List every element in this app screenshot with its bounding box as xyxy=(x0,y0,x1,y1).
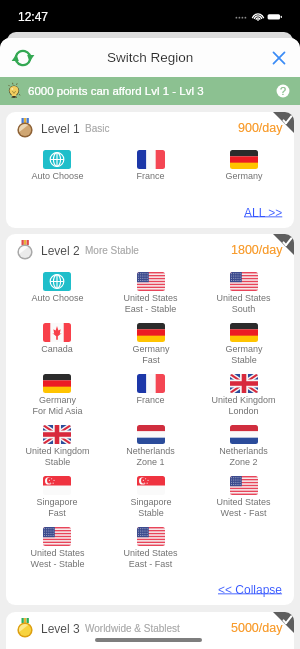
staticText: Auto Choose xyxy=(31,293,84,303)
button[interactable]: ALL >> xyxy=(244,206,283,219)
button[interactable]: << Collapse xyxy=(218,583,283,596)
staticText: Germany Fast xyxy=(132,344,170,365)
staticText: Netherlands Zone 2 xyxy=(219,446,268,467)
button[interactable]: Help xyxy=(276,84,290,98)
staticText: 5000/day xyxy=(231,621,283,635)
staticText: Germany For Mid Asia xyxy=(32,395,83,416)
staticText: Switch Region xyxy=(107,50,194,65)
staticText: 12:47 xyxy=(18,10,49,23)
button[interactable]: Germany xyxy=(197,150,290,181)
staticText: United States East - Stable xyxy=(123,293,178,314)
staticText: Level 3 xyxy=(41,622,80,635)
staticText: Basic xyxy=(85,123,110,134)
staticText: United States South xyxy=(216,293,271,314)
staticText: United Kingdom Stable xyxy=(25,446,90,467)
staticText: 1800/day xyxy=(231,243,283,257)
button[interactable]: United States East - Stable xyxy=(104,272,197,314)
staticText: United States West - Stable xyxy=(30,548,85,569)
button[interactable]: Singapore Stable xyxy=(104,476,197,518)
staticText: France xyxy=(136,171,165,181)
button[interactable]: Netherlands Zone 1 xyxy=(104,425,197,467)
staticText: Auto Choose xyxy=(31,171,84,181)
staticText: 900/day xyxy=(238,121,283,135)
button[interactable]: Auto Choose xyxy=(10,272,104,303)
staticText: Netherlands Zone 1 xyxy=(126,446,175,467)
staticText: Canada xyxy=(41,344,73,354)
button[interactable]: Germany Stable xyxy=(197,323,290,365)
staticText: Germany xyxy=(225,171,263,181)
button[interactable]: Singapore Fast xyxy=(10,476,104,518)
button[interactable]: United States West - Stable xyxy=(10,527,104,569)
button[interactable]: United States South xyxy=(197,272,290,314)
staticText: United States East - Fast xyxy=(123,548,178,569)
staticText: Worldwide & Stablest xyxy=(85,623,180,634)
button[interactable]: Germany For Mid Asia xyxy=(10,374,104,416)
button[interactable]: Close xyxy=(267,46,291,70)
staticText: United States West - Fast xyxy=(216,497,271,518)
staticText: Level 1 xyxy=(41,122,80,135)
staticText: Level 2 xyxy=(41,244,80,257)
staticText: Germany Stable xyxy=(225,344,263,365)
button[interactable]: Refresh xyxy=(11,46,35,70)
button[interactable]: France xyxy=(104,150,197,181)
button[interactable]: United Kingdom London xyxy=(197,374,290,416)
button[interactable]: Canada xyxy=(10,323,104,354)
staticText: Singapore Stable xyxy=(130,497,172,518)
button[interactable]: Netherlands Zone 2 xyxy=(197,425,290,467)
staticText: France xyxy=(136,395,165,405)
staticText: More Stable xyxy=(85,245,139,256)
staticText: United Kingdom London xyxy=(211,395,276,416)
button[interactable]: United Kingdom Stable xyxy=(10,425,104,467)
button[interactable]: France xyxy=(104,374,197,405)
button[interactable]: Auto Choose xyxy=(10,150,104,181)
staticText: 6000 points can afford Lvl 1 - Lvl 3 xyxy=(28,85,204,98)
button[interactable]: United States West - Fast xyxy=(197,476,290,518)
staticText: Singapore Fast xyxy=(36,497,78,518)
staticText: ? xyxy=(280,85,287,97)
button[interactable]: Germany Fast xyxy=(104,323,197,365)
button[interactable]: United States East - Fast xyxy=(104,527,197,569)
